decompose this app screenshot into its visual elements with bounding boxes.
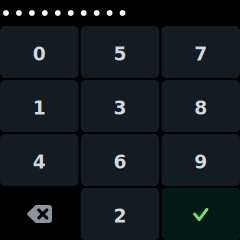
button[interactable]: 2 [81,188,159,240]
staticText: 0 [33,43,46,65]
button[interactable]: Confirm [161,188,240,240]
button[interactable]: 3 [81,80,159,132]
staticText: 9 [194,151,207,173]
staticText: 7 [194,43,207,65]
button[interactable]: 4 [0,134,78,186]
staticText: 6 [113,151,126,173]
staticText: 2 [113,205,126,227]
button[interactable]: 8 [161,80,240,132]
staticText: 4 [33,151,46,173]
staticText: 1 [33,97,46,119]
button[interactable]: 9 [161,134,240,186]
staticText: 8 [194,97,207,119]
button[interactable]: 0 [0,26,78,78]
button[interactable]: 6 [81,134,159,186]
button[interactable]: 7 [161,26,240,78]
button[interactable]: Delete [0,188,78,240]
button[interactable]: 1 [0,80,78,132]
staticText: 3 [113,97,126,119]
staticText: 5 [113,43,126,65]
button[interactable]: 5 [81,26,159,78]
